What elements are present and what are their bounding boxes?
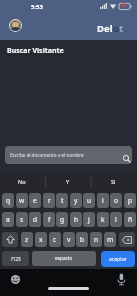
staticText: t [61,196,64,205]
staticText: t [119,22,124,35]
button[interactable] [9,19,22,32]
staticText: j [88,215,90,224]
button[interactable]: espacio [32,251,96,266]
staticText: z [25,235,29,244]
staticText: h [74,215,79,224]
staticText: c [53,235,57,244]
button[interactable]: b [76,232,88,247]
button[interactable]: ñ [124,212,136,227]
staticText: q [6,196,11,205]
staticText: i [102,196,104,205]
button[interactable]: a [2,212,14,227]
button[interactable]: h [70,212,82,227]
button[interactable]: aceptar [101,251,135,267]
staticText: Y [66,178,70,186]
button[interactable] [8,272,23,287]
staticText: Escribe el documento o el nombre [10,152,84,158]
staticText: s [20,215,24,224]
button[interactable]: o [110,193,122,208]
button[interactable]: l [110,212,122,227]
button[interactable]: j [83,212,95,227]
staticText: ñ [128,215,133,224]
button[interactable]: f [43,212,55,227]
staticText: Si [111,178,116,186]
button[interactable]: e [29,193,41,208]
button[interactable]: n [90,232,102,247]
staticText: f [48,215,51,224]
button[interactable]: No [12,176,32,188]
button[interactable] [114,272,129,287]
button[interactable]: i [97,193,109,208]
staticText: y [74,196,78,205]
staticText: 5:53 [31,3,43,11]
staticText: x [39,235,43,244]
staticText: Buscar Visitante [7,46,64,56]
button[interactable]: y [70,193,82,208]
button[interactable]: z [21,232,33,247]
staticText: l [115,215,117,224]
staticText: k [101,215,105,224]
button[interactable]: s [16,212,28,227]
staticText: o [113,22,119,35]
staticText: m [107,235,114,244]
button[interactable]: p [124,193,136,208]
staticText: w [19,196,25,205]
staticText: espacio [55,255,73,262]
button[interactable] [119,232,135,247]
button[interactable]: w [16,193,28,208]
button[interactable]: g [56,212,68,227]
staticText: o [114,196,118,205]
button[interactable]: c [49,232,61,247]
staticText: r [48,196,51,205]
button[interactable]: q [2,193,14,208]
button[interactable]: t [56,193,68,208]
button[interactable] [2,232,18,247]
button[interactable]: Y [58,176,78,188]
staticText: u [87,196,92,205]
button[interactable]: u [83,193,95,208]
button[interactable]: ?123 [2,251,29,266]
staticText: aceptar [109,256,127,263]
staticText: n [94,235,99,244]
staticText: p [128,196,133,205]
button[interactable]: k [97,212,109,227]
button[interactable]: Escribe el documento o el nombre [5,146,132,164]
button[interactable]: Del [97,22,124,35]
staticText: No [18,178,26,186]
button[interactable]: v [63,232,75,247]
staticText: a [6,215,10,224]
staticText: v [67,235,71,244]
staticText: 12 [121,2,127,9]
staticText: Del [97,22,113,35]
button[interactable]: r [43,193,55,208]
staticText: ?123 [11,256,21,262]
button[interactable]: d [29,212,41,227]
button[interactable]: Si [103,176,123,188]
staticText: e [33,196,37,205]
staticText: g [60,215,65,224]
staticText: b [80,235,85,244]
staticText: d [33,215,38,224]
button[interactable]: m [104,232,116,247]
button[interactable]: x [35,232,47,247]
